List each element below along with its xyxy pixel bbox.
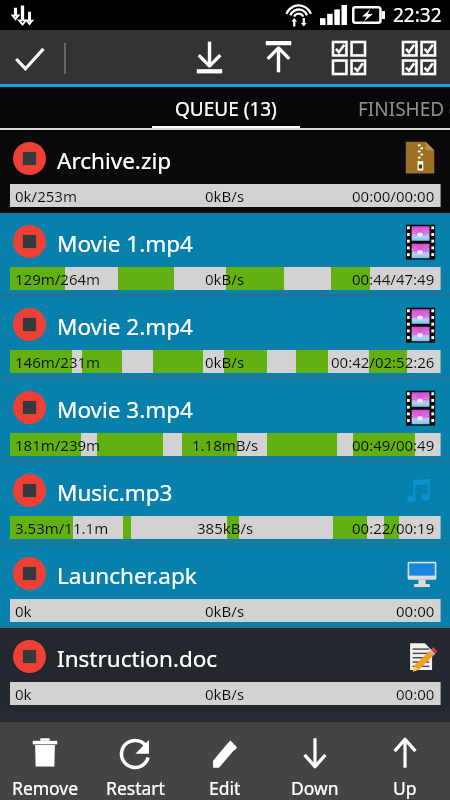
button[interactable]: Download bbox=[181, 30, 237, 84]
staticText: 0kB/s bbox=[205, 684, 245, 704]
button[interactable]: Invert selection bbox=[324, 30, 374, 84]
staticText: 0kB/s bbox=[205, 269, 245, 289]
staticText: Movie 1.mp4 bbox=[57, 228, 193, 259]
button[interactable]: Archive.zip bbox=[0, 130, 450, 213]
staticText: 129m/264m bbox=[15, 269, 101, 289]
staticText: 00:44/47:49 bbox=[352, 269, 435, 289]
button[interactable]: Upload bbox=[250, 30, 306, 84]
staticText: FINISHED ( bbox=[358, 96, 450, 122]
button[interactable]: QUEUE (13) bbox=[152, 87, 300, 130]
staticText: 0k bbox=[15, 601, 32, 621]
button[interactable]: Remove bbox=[0, 722, 90, 800]
staticText: Movie 2.mp4 bbox=[57, 311, 193, 342]
staticText: 181m/239m bbox=[15, 435, 101, 455]
staticText: QUEUE (13) bbox=[175, 96, 277, 122]
staticText: Movie 3.mp4 bbox=[57, 394, 193, 425]
staticText: Music.mp3 bbox=[57, 477, 173, 508]
button[interactable]: Up bbox=[360, 722, 450, 800]
staticText: Archive.zip bbox=[57, 145, 172, 176]
button[interactable]: Edit bbox=[180, 722, 270, 800]
staticText: 00:00 bbox=[396, 601, 435, 621]
staticText: 1.18mB/s bbox=[192, 435, 259, 455]
button[interactable]: Launcher.apk bbox=[0, 545, 450, 628]
staticText: 146m/231m bbox=[15, 352, 101, 372]
staticText: 0kB/s bbox=[205, 186, 245, 206]
staticText: Launcher.apk bbox=[57, 560, 197, 591]
button[interactable]: Instruction.doc bbox=[0, 628, 450, 711]
staticText: Edit bbox=[209, 776, 241, 800]
button[interactable]: Select bbox=[0, 30, 58, 84]
staticText: Restart bbox=[106, 776, 165, 800]
button[interactable]: Music.mp3 bbox=[0, 462, 450, 545]
staticText: 00:42/02:52:26 bbox=[331, 352, 435, 372]
staticText: 0k bbox=[15, 684, 32, 704]
button[interactable]: Movie 1.mp4 bbox=[0, 213, 450, 296]
staticText: 3.53m/11.1m bbox=[15, 518, 109, 538]
button[interactable]: Movie 3.mp4 bbox=[0, 379, 450, 462]
button[interactable]: Select all bbox=[394, 30, 444, 84]
button[interactable]: FINISHED ( bbox=[300, 87, 450, 130]
button[interactable]: Movie 2.mp4 bbox=[0, 296, 450, 379]
staticText: Down bbox=[291, 776, 339, 800]
staticText: 0kB/s bbox=[205, 352, 245, 372]
staticText: 0k/253m bbox=[15, 186, 77, 206]
staticText: 00:00 bbox=[396, 684, 435, 704]
staticText: 22:32 bbox=[393, 2, 442, 28]
staticText: 0kB/s bbox=[205, 601, 245, 621]
button[interactable]: Restart bbox=[90, 722, 180, 800]
staticText: Instruction.doc bbox=[57, 643, 218, 674]
staticText: Up bbox=[393, 776, 417, 800]
button[interactable]: Down bbox=[270, 722, 360, 800]
staticText: 00:49/00:49 bbox=[352, 435, 435, 455]
staticText: 00:00/00:00 bbox=[352, 186, 435, 206]
staticText: Remove bbox=[12, 776, 79, 800]
staticText: 385kB/s bbox=[197, 518, 254, 538]
staticText: 00:22/00:19 bbox=[352, 518, 435, 538]
